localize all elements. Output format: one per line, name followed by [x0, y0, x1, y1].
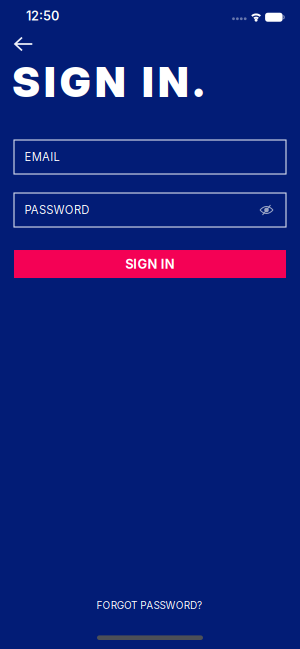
staticText: EMAIL: [24, 150, 59, 164]
staticText: SIGN IN: [125, 256, 175, 272]
button[interactable]: EMAIL: [14, 140, 286, 174]
staticText: SIGN IN.: [12, 57, 204, 107]
staticText: PASSWORD: [24, 203, 89, 217]
button[interactable]: FORGOT PASSWORD?: [0, 599, 300, 611]
staticText: 12:50: [26, 8, 59, 24]
staticText: FORGOT PASSWORD?: [96, 599, 202, 611]
button[interactable]: PASSWORD: [14, 193, 286, 227]
button[interactable]: SIGN IN: [14, 250, 286, 278]
button[interactable]: [0, 32, 34, 51]
